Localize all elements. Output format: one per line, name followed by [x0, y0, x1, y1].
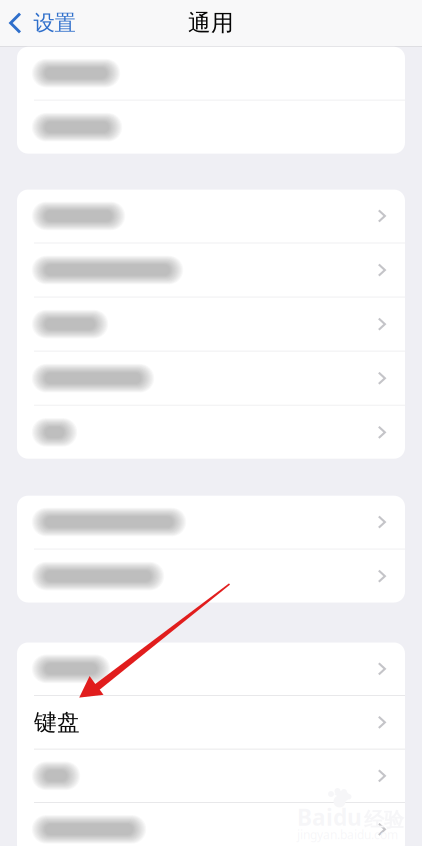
- button[interactable]: Settings item: [17, 47, 405, 99]
- staticText: 通用: [188, 9, 234, 37]
- button[interactable]: Settings item: [17, 550, 405, 602]
- button[interactable]: Settings item: [17, 244, 405, 296]
- button[interactable]: 键盘: [17, 696, 405, 749]
- button[interactable]: Settings item: [17, 298, 405, 350]
- button[interactable]: Settings item: [17, 749, 405, 802]
- button[interactable]: Settings item: [17, 101, 405, 154]
- button[interactable]: Settings item: [17, 642, 405, 695]
- button[interactable]: 设置: [0, 0, 87, 46]
- button[interactable]: Settings item: [17, 803, 405, 846]
- staticText: 设置: [33, 10, 75, 36]
- staticText: jingyan.baidu.com: [297, 826, 398, 842]
- button[interactable]: Settings item: [17, 406, 405, 459]
- staticText: Baidu: [297, 802, 362, 832]
- button[interactable]: Settings item: [17, 496, 405, 548]
- button[interactable]: Settings item: [17, 190, 405, 242]
- button[interactable]: Settings item: [17, 352, 405, 405]
- staticText: 经验: [364, 807, 404, 832]
- staticText: 键盘: [34, 708, 80, 736]
